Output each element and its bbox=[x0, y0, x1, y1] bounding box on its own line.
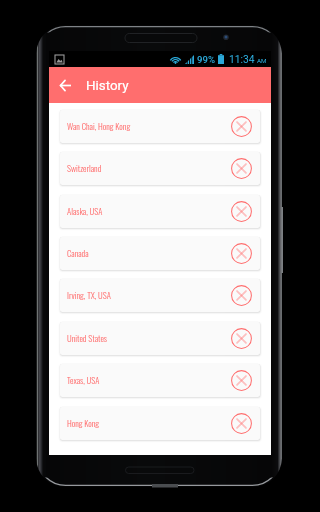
staticText: AM bbox=[257, 57, 267, 64]
button[interactable]: United States bbox=[60, 322, 260, 355]
staticText: 99% bbox=[197, 54, 215, 65]
button[interactable]: Remove bbox=[230, 412, 253, 435]
staticText: Hong Kong bbox=[67, 417, 100, 430]
button[interactable]: Irving, TX, USA bbox=[60, 279, 260, 312]
staticText: 11:34 bbox=[229, 53, 255, 65]
staticText: United States bbox=[67, 332, 107, 345]
button[interactable]: Remove bbox=[230, 242, 253, 265]
button[interactable]: Remove bbox=[230, 115, 253, 138]
button[interactable]: Canada bbox=[60, 237, 260, 270]
button[interactable]: Alaska, USA bbox=[60, 195, 260, 228]
button[interactable]: Back bbox=[54, 74, 76, 96]
staticText: History bbox=[86, 78, 129, 94]
staticText: Alaska, USA bbox=[67, 205, 103, 218]
staticText: Canada bbox=[67, 247, 89, 260]
staticText: Texas, USA bbox=[67, 374, 100, 387]
button[interactable]: Wan Chai, Hong Kong bbox=[60, 110, 260, 143]
button[interactable]: Remove bbox=[230, 369, 253, 392]
staticText: Wan Chai, Hong Kong bbox=[67, 120, 131, 133]
button[interactable]: Remove bbox=[230, 157, 253, 180]
button[interactable]: Texas, USA bbox=[60, 364, 260, 397]
button[interactable]: Remove bbox=[230, 200, 253, 223]
button[interactable]: Hong Kong bbox=[60, 407, 260, 440]
staticText: Irving, TX, USA bbox=[67, 289, 111, 302]
staticText: Switzerland bbox=[67, 162, 102, 175]
button[interactable]: Remove bbox=[230, 327, 253, 350]
button[interactable]: Switzerland bbox=[60, 152, 260, 185]
button[interactable]: Remove bbox=[230, 284, 253, 307]
